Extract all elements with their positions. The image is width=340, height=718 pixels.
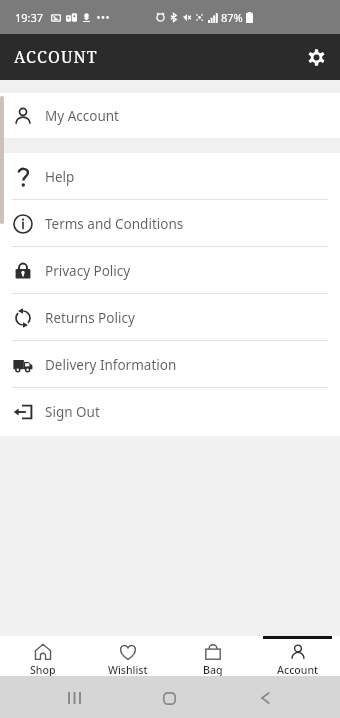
- button[interactable]: Recent apps: [68, 692, 81, 704]
- staticText: Sign Out: [45, 403, 100, 421]
- staticText: Bag: [203, 663, 223, 676]
- button[interactable]: Privacy Policy: [0, 247, 340, 294]
- staticText: Account: [277, 663, 319, 676]
- button[interactable]: Bag: [170, 636, 255, 676]
- button[interactable]: Help: [0, 153, 340, 200]
- staticText: 19:37: [15, 10, 44, 25]
- button[interactable]: Wishlist: [85, 636, 170, 676]
- button[interactable]: Home: [163, 692, 176, 705]
- staticText: Help: [45, 168, 75, 186]
- button[interactable]: My Account: [0, 93, 340, 138]
- staticText: Privacy Policy: [45, 262, 131, 280]
- button[interactable]: Settings: [303, 44, 329, 70]
- button[interactable]: Account: [255, 636, 340, 676]
- button[interactable]: Terms and Conditions: [0, 200, 340, 247]
- staticText: ACCOUNT: [14, 46, 98, 68]
- staticText: Shop: [30, 663, 56, 676]
- staticText: Returns Policy: [45, 309, 135, 327]
- staticText: Wishlist: [108, 663, 148, 676]
- button[interactable]: Shop: [0, 636, 85, 676]
- staticText: Delivery Information: [45, 356, 177, 374]
- staticText: Terms and Conditions: [45, 215, 184, 233]
- button[interactable]: Delivery Information: [0, 341, 340, 388]
- button[interactable]: Sign Out: [0, 388, 340, 436]
- button[interactable]: Returns Policy: [0, 294, 340, 341]
- staticText: 87%: [221, 10, 243, 25]
- staticText: My Account: [45, 107, 119, 125]
- button[interactable]: Back: [259, 692, 271, 704]
